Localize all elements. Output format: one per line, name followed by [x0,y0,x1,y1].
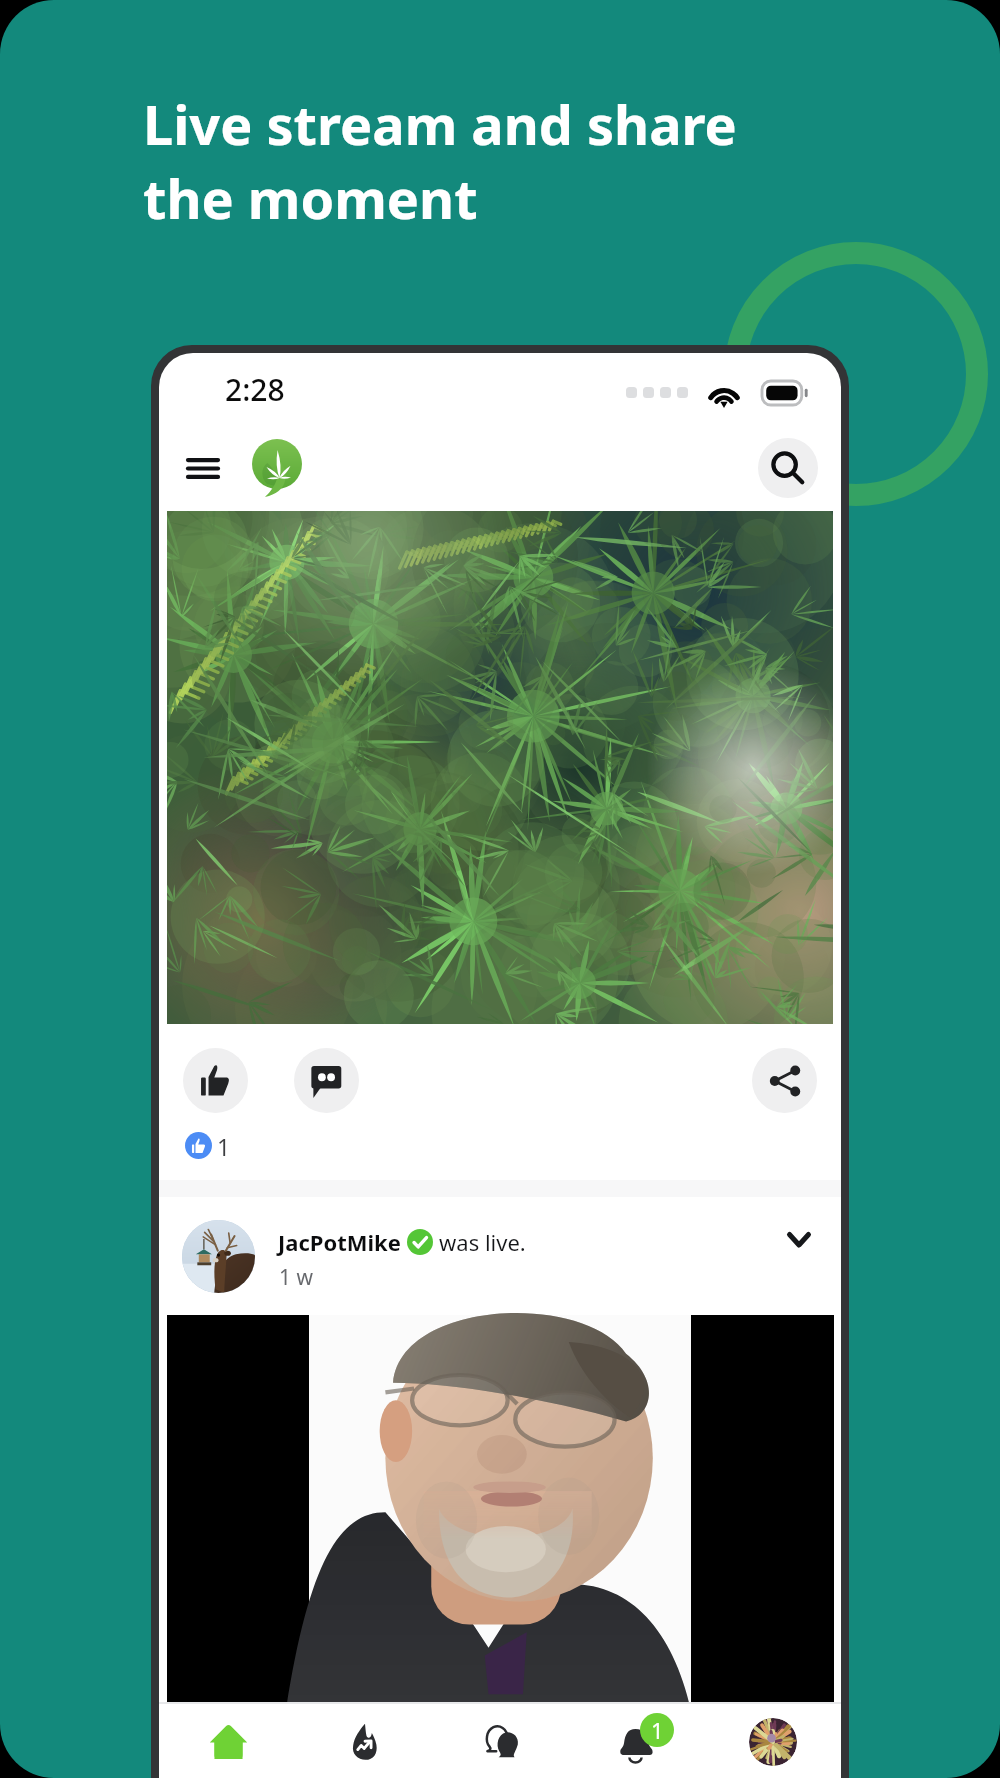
button[interactable]: Menu [175,440,231,496]
staticText: the moment [143,161,478,235]
staticText: 1 [651,1715,664,1745]
button[interactable]: Comment [294,1048,359,1113]
button[interactable]: Share [752,1048,817,1113]
button[interactable]: Home [195,1709,261,1775]
button[interactable]: Profile [749,1718,797,1766]
button[interactable]: Trending [332,1709,398,1775]
staticText: 1 w [279,1263,313,1292]
staticText: JacPotMike [278,1227,401,1257]
button[interactable]: Notifications [604,1709,670,1775]
staticText: 1 [217,1131,231,1162]
button[interactable]: Search [758,438,818,498]
button[interactable]: Like [183,1048,248,1113]
button[interactable]: Messages [468,1709,534,1775]
button[interactable]: App logo [252,439,302,501]
staticText: 2:28 [225,369,285,410]
button[interactable]: More options [774,1215,824,1265]
staticText: Live stream and share [143,87,737,161]
staticText: was live. [439,1227,526,1257]
